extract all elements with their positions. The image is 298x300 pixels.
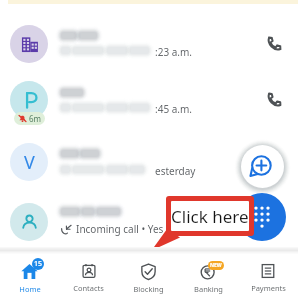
- button[interactable]: Call: [259, 29, 289, 59]
- staticText: esterday: [155, 164, 196, 178]
- staticText: Contacts: [73, 283, 104, 293]
- staticText: :23 a.m.: [155, 45, 193, 59]
- staticText: Incoming call • Yes: [76, 222, 164, 236]
- button[interactable]: Payments: [238, 254, 298, 293]
- staticText: NEW: [210, 262, 222, 269]
- button[interactable]: NEW: [178, 254, 238, 294]
- button[interactable]: Click here: [166, 196, 254, 236]
- button[interactable]: New message: [236, 140, 289, 193]
- button[interactable]: Incoming call • Yes: [0, 192, 298, 252]
- button[interactable]: :23 a.m.: [0, 14, 298, 74]
- button[interactable]: Dialpad: [238, 193, 286, 241]
- staticText: Home: [19, 284, 41, 294]
- staticText: 15: [34, 259, 43, 269]
- staticText: Blocking: [133, 284, 164, 294]
- staticText: 6m: [29, 113, 42, 124]
- button[interactable]: Call: [259, 85, 289, 115]
- button[interactable]: V: [0, 132, 298, 192]
- staticText: V: [24, 150, 35, 175]
- button[interactable]: Contacts: [59, 254, 118, 293]
- staticText: Click here: [171, 205, 249, 228]
- button[interactable]: Blocking: [118, 254, 178, 294]
- staticText: Banking: [194, 284, 223, 294]
- staticText: :45 a.m.: [155, 102, 193, 116]
- button[interactable]: 6m: [0, 70, 298, 130]
- button[interactable]: 15: [0, 254, 59, 294]
- staticText: Payments: [251, 283, 286, 293]
